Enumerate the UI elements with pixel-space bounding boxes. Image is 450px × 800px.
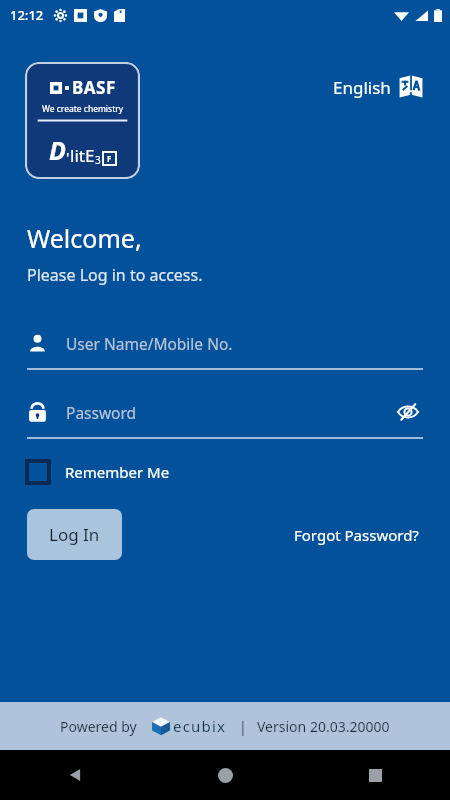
button[interactable]: User Name/Mobile No. — [27, 326, 423, 370]
staticText: litE — [70, 144, 95, 167]
staticText: BASF — [72, 76, 116, 99]
staticText: Forgot Password? — [294, 525, 419, 545]
button[interactable]: Change language — [333, 74, 424, 100]
staticText: Welcome, — [27, 221, 142, 255]
button[interactable]: Log In — [27, 509, 122, 560]
staticText: Password — [66, 402, 137, 423]
staticText: | — [239, 717, 247, 736]
button[interactable]: Forgot Password? — [290, 521, 423, 549]
button[interactable]: Password — [27, 395, 423, 439]
staticText: 12:12 — [10, 6, 44, 24]
staticText: D — [49, 133, 66, 167]
staticText: ' — [66, 147, 70, 167]
staticText: We create chemistry — [42, 103, 124, 115]
staticText: Please Log in to access. — [27, 264, 203, 286]
staticText: English — [333, 76, 391, 99]
button[interactable]: Back — [0, 750, 150, 800]
button[interactable]: Home — [150, 750, 300, 800]
staticText: F — [107, 153, 112, 164]
staticText: Version 20.03.20000 — [257, 717, 390, 736]
staticText: Powered by — [60, 717, 137, 736]
staticText: User Name/Mobile No. — [66, 333, 233, 354]
staticText: Log In — [49, 523, 100, 546]
button[interactable]: Show password — [393, 397, 423, 427]
staticText: Remember Me — [65, 462, 170, 482]
button[interactable]: Recents — [300, 750, 450, 800]
staticText: 3 — [95, 153, 101, 167]
button[interactable]: Remember Me — [27, 461, 170, 483]
staticText: ecubix — [173, 716, 227, 736]
